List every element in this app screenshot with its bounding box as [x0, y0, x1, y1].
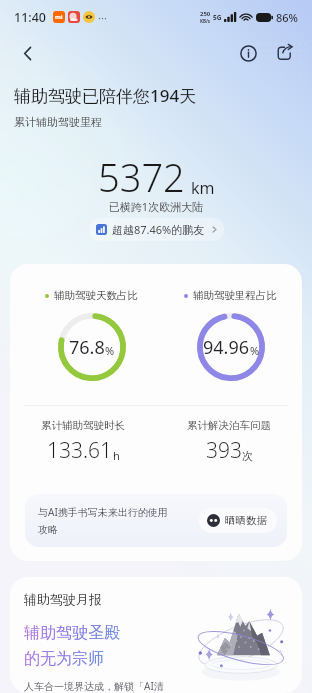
staticText: 11:40 [14, 9, 47, 26]
staticText: 94.96 [203, 335, 250, 360]
button[interactable]: 辅助驾驶月报 [10, 577, 302, 693]
button[interactable]: Info [233, 38, 263, 68]
staticText: 76.8 [69, 335, 105, 360]
staticText: 累计解决泊车问题 [187, 419, 271, 432]
staticText: 250 [200, 10, 211, 18]
staticText: 辅助驾驶月报 [24, 591, 102, 607]
staticText: 辅助驾驶已陪伴您194天 [14, 84, 197, 107]
staticText: 的无为宗师 [24, 649, 104, 669]
staticText: ··· [98, 10, 107, 25]
staticText: 辅助驾驶里程占比 [193, 289, 277, 302]
button[interactable]: Share [269, 38, 299, 68]
staticText: 次 [242, 449, 253, 463]
button[interactable]: Back [13, 38, 43, 68]
staticText: km [191, 177, 215, 199]
staticText: 累计辅助驾驶里程 [14, 115, 102, 129]
staticText: 与AI携手书写未来出行的使用攻略 [38, 505, 171, 536]
staticText: KB/s [200, 18, 211, 24]
staticText: 86% [276, 10, 298, 25]
staticText: 辅助驾驶天数占比 [54, 289, 138, 302]
staticText: 5372 [98, 151, 185, 203]
button[interactable]: 超越87.46%的鹏友 [89, 218, 224, 241]
button[interactable]: 晒晒数据 [199, 508, 277, 533]
staticText: 人车合一境界达成，解锁「AI清 [24, 679, 164, 693]
staticText: 5G [213, 13, 222, 22]
staticText: mi [55, 13, 63, 21]
staticText: h [113, 448, 120, 463]
staticText: 已横跨1次欧洲大陆 [14, 199, 298, 214]
staticText: 393 [206, 436, 242, 465]
staticText: 辅助驾驶圣殿 [24, 623, 120, 643]
button[interactable]: 与AI携手书写未来出行的使用攻略 [25, 494, 287, 547]
staticText: 超越87.46%的鹏友 [112, 222, 205, 237]
staticText: 133.61 [47, 436, 113, 465]
staticText: 累计辅助驾驶时长 [41, 419, 125, 432]
staticText: % [105, 343, 115, 358]
staticText: % [250, 343, 260, 358]
staticText: 晒晒数据 [225, 514, 267, 527]
